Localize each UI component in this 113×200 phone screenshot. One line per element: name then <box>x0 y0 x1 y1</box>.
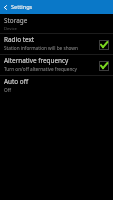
staticText: Device <box>4 26 17 32</box>
staticText: Station information will be shown <box>4 45 78 51</box>
button[interactable]: Auto off <box>0 76 113 96</box>
staticText: Turn on/off alternative frequency <box>4 66 77 72</box>
staticText: Auto off <box>4 77 29 86</box>
staticText: Off <box>4 87 11 93</box>
staticText: Alternative frequency <box>4 56 69 65</box>
staticText: Storage <box>4 16 28 25</box>
staticText: Radio text <box>4 35 35 44</box>
button[interactable]: Alternative frequency <box>0 55 113 75</box>
button[interactable]: Back <box>0 0 11 14</box>
staticText: Settings <box>11 3 33 11</box>
button[interactable]: Radio text <box>0 34 113 54</box>
